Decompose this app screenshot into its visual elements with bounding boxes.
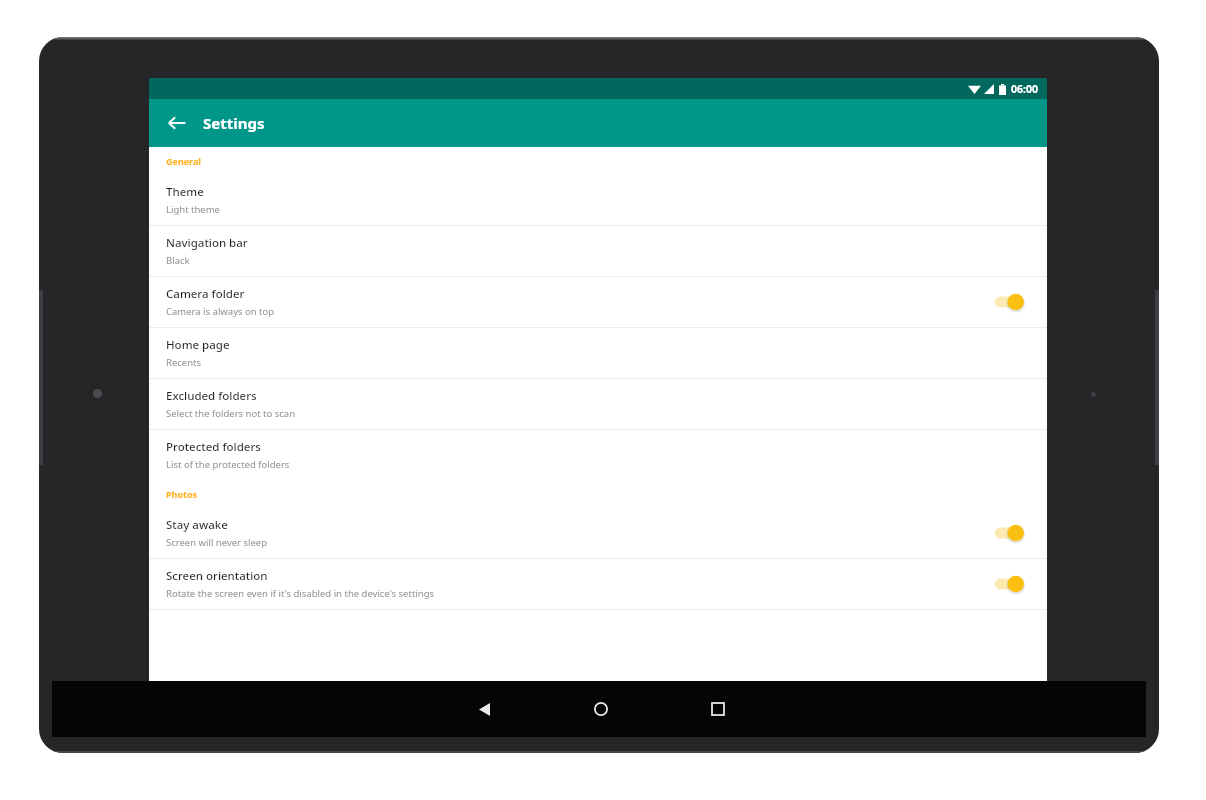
staticText: Screen orientation — [166, 568, 268, 584]
staticText: List of the protected folders — [166, 458, 290, 471]
staticText: Settings — [203, 113, 265, 133]
button[interactable]: Camera folder — [149, 277, 1047, 328]
button[interactable]: Home — [581, 689, 621, 729]
button[interactable]: Home page — [149, 328, 1047, 379]
button[interactable]: Theme — [149, 175, 1047, 226]
staticText: Select the folders not to scan — [166, 407, 296, 420]
button[interactable]: Navigation bar — [149, 226, 1047, 277]
button[interactable]: Excluded folders — [149, 379, 1047, 430]
staticText: Stay awake — [166, 517, 228, 533]
button[interactable]: Toggle setting — [991, 521, 1029, 545]
button[interactable]: Navigate up — [158, 104, 196, 142]
staticText: Excluded folders — [166, 388, 257, 404]
staticText: Home page — [166, 337, 230, 353]
button[interactable]: Toggle setting — [991, 572, 1029, 596]
staticText: Camera folder — [166, 286, 245, 302]
button[interactable]: Protected folders — [149, 430, 1047, 480]
staticText: Light theme — [166, 203, 220, 216]
button[interactable]: Screen orientation — [149, 559, 1047, 610]
button[interactable]: Recent apps — [698, 689, 738, 729]
staticText: Protected folders — [166, 439, 261, 455]
staticText: Navigation bar — [166, 235, 248, 251]
staticText: 06:00 — [1011, 82, 1038, 96]
staticText: Camera is always on top — [166, 305, 275, 318]
staticText: Recents — [166, 356, 202, 369]
button[interactable]: Back — [464, 689, 504, 729]
staticText: Black — [166, 254, 190, 267]
staticText: Theme — [166, 184, 204, 200]
staticText: Screen will never sleep — [166, 536, 268, 549]
button[interactable]: Toggle setting — [991, 290, 1029, 314]
staticText: Photos — [166, 488, 198, 500]
staticText: General — [166, 155, 202, 167]
button[interactable]: Stay awake — [149, 508, 1047, 559]
staticText: Rotate the screen even if it's disabled … — [166, 587, 435, 600]
